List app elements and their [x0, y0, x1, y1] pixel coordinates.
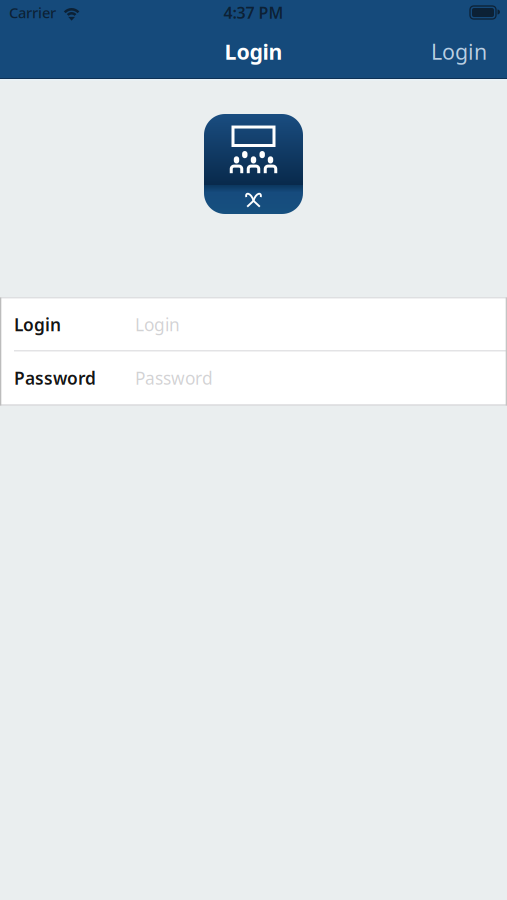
staticText: Login [135, 313, 180, 336]
staticText: Login [431, 37, 487, 66]
staticText: Login [224, 37, 282, 66]
staticText: 4:37 PM [223, 2, 283, 23]
button[interactable]: Login [0, 298, 507, 350]
staticText: Login [14, 313, 61, 336]
button[interactable]: Login [415, 25, 507, 78]
staticText: Password [135, 366, 213, 389]
button[interactable]: Password [0, 351, 507, 404]
staticText: Carrier [9, 3, 56, 22]
staticText: Password [14, 366, 96, 389]
